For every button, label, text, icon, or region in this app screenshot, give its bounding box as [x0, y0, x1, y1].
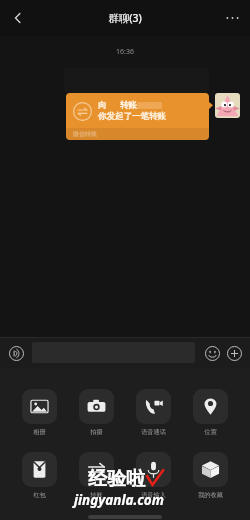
- button[interactable]: 拍摄: [68, 389, 125, 436]
- button[interactable]: More functions: [223, 342, 245, 364]
- staticText: jingyanla.com: [74, 491, 164, 509]
- staticText: 语音通话: [141, 428, 166, 436]
- staticText: 转账: [120, 100, 137, 111]
- button[interactable]: 向: [66, 93, 209, 140]
- button[interactable]: 位置: [182, 389, 239, 436]
- button[interactable]: Avatar: [215, 93, 240, 118]
- staticText: 你发起了一笔转账: [98, 111, 166, 122]
- staticText: 向: [98, 100, 107, 111]
- staticText: 转账: [90, 491, 103, 499]
- button[interactable]: 转账: [68, 452, 125, 499]
- staticText: 经验啦: [88, 467, 145, 491]
- staticText: 16:36: [116, 47, 134, 57]
- button[interactable]: More options: [217, 3, 247, 33]
- staticText: 位置: [204, 428, 217, 436]
- button[interactable]: 语音通话: [125, 389, 182, 436]
- staticText: 群聊(3): [108, 11, 142, 25]
- staticText: 我的收藏: [198, 491, 223, 499]
- button[interactable]: 我的收藏: [182, 452, 239, 499]
- button[interactable]: 相册: [11, 389, 68, 436]
- button[interactable]: 语音输入: [125, 452, 182, 499]
- staticText: 红包: [33, 491, 46, 499]
- staticText: 相册: [33, 428, 46, 436]
- staticText: 拍摄: [90, 428, 103, 436]
- button[interactable]: Back: [3, 3, 33, 33]
- staticText: 语音输入: [141, 491, 166, 499]
- button[interactable]: Emoji: [201, 342, 223, 364]
- button[interactable]: Voice message: [5, 342, 27, 364]
- button[interactable]: 红包: [11, 452, 68, 499]
- staticText: 微信转账: [73, 130, 97, 138]
